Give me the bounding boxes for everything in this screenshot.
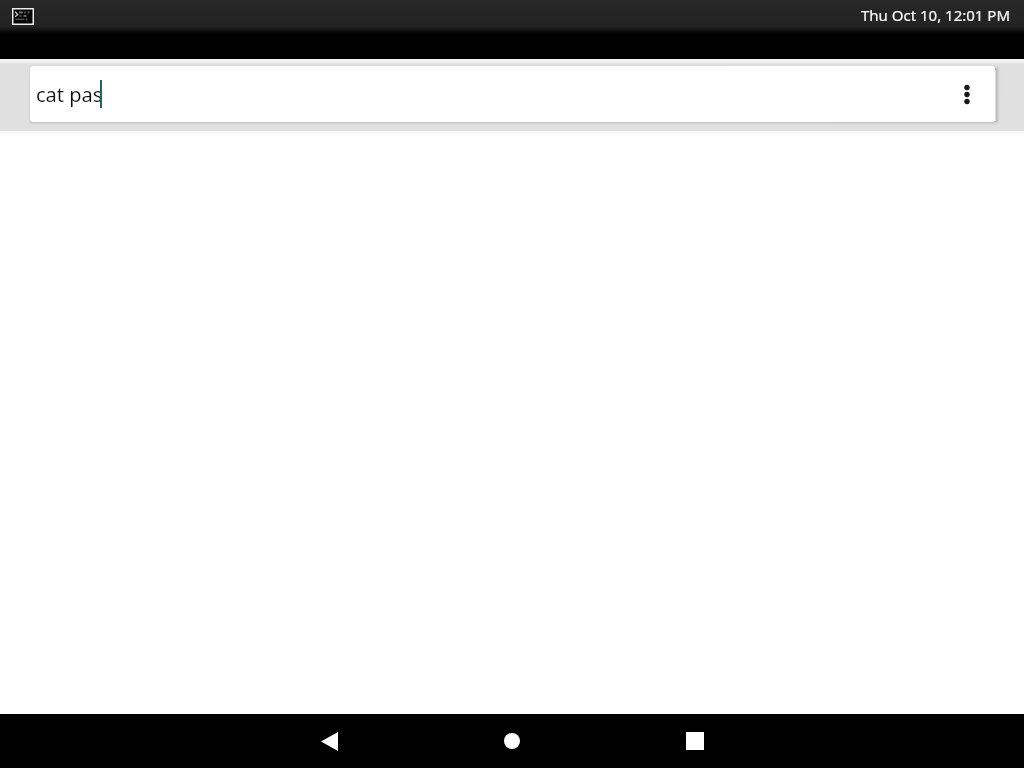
button[interactable]: Recent apps — [647, 714, 743, 768]
other: Notification — [12, 8, 34, 25]
button[interactable]: More options — [939, 66, 995, 122]
button[interactable]: Back — [281, 714, 377, 768]
staticText: Thu Oct 10, 12:01 PM — [861, 5, 1011, 25]
button[interactable]: Home — [464, 714, 560, 768]
staticText: cat pas — [36, 81, 103, 108]
button[interactable]: cat pas — [30, 66, 995, 122]
